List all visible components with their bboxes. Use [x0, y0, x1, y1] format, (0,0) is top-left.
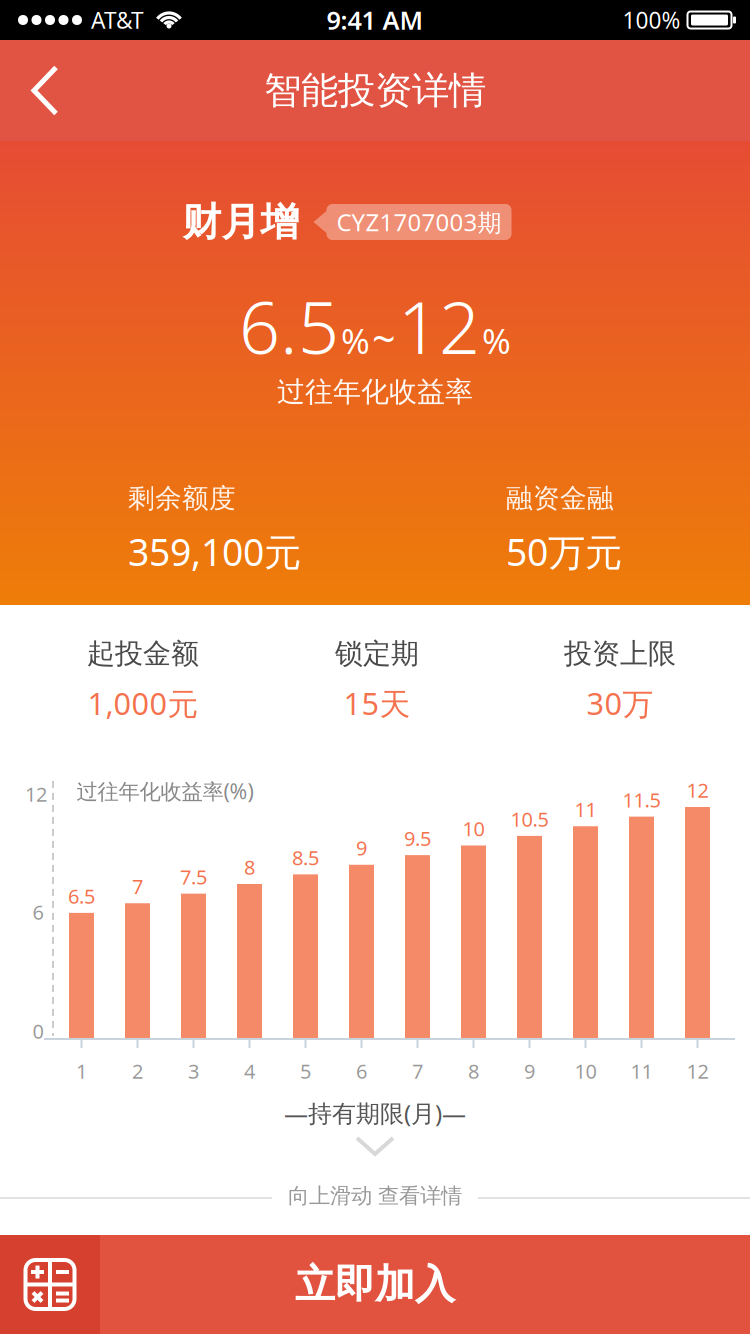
staticText: 100%: [622, 5, 680, 35]
staticText: 9:41 AM: [326, 3, 423, 37]
staticText: 7: [412, 1058, 423, 1084]
staticText: 8.5: [292, 844, 319, 871]
staticText: 3: [188, 1058, 199, 1084]
staticText: 6.5: [239, 278, 339, 374]
staticText: 7.5: [180, 863, 207, 890]
staticText: 7: [132, 873, 143, 900]
staticText: 359,100元: [128, 527, 301, 576]
staticText: 12: [25, 781, 47, 807]
staticText: 8: [244, 854, 255, 880]
staticText: 过往年化收益率: [277, 375, 473, 409]
staticText: 50万元: [506, 527, 622, 576]
staticText: 11: [574, 796, 596, 823]
staticText: 11: [630, 1058, 652, 1084]
staticText: 0: [32, 1018, 43, 1044]
staticText: 4: [244, 1058, 255, 1084]
staticText: 智能投资详情: [264, 68, 486, 113]
staticText: 10: [574, 1058, 596, 1084]
staticText: CYZ1707003期: [336, 206, 501, 238]
staticText: 12: [686, 777, 708, 803]
staticText: —持有期限(月)—: [284, 1097, 466, 1129]
staticText: 财月增: [182, 198, 299, 246]
staticText: 10.5: [510, 806, 548, 832]
staticText: %: [341, 317, 370, 363]
staticText: 立即加入: [295, 1260, 455, 1309]
staticText: 融资金融: [506, 482, 614, 515]
staticText: 10: [462, 815, 484, 842]
staticText: 9: [356, 834, 367, 861]
staticText: 过往年化收益率(%): [76, 777, 253, 805]
button[interactable]: Calculator: [0, 1235, 100, 1334]
staticText: 向上滑动 查看详情: [288, 1183, 462, 1209]
staticText: 12: [686, 1058, 708, 1084]
staticText: 1,000元: [87, 683, 198, 723]
staticText: 6: [356, 1058, 367, 1084]
staticText: 锁定期: [335, 636, 419, 671]
button[interactable]: Back: [0, 43, 86, 137]
staticText: 1: [76, 1058, 87, 1084]
staticText: 9.5: [404, 825, 431, 851]
button[interactable]: 立即加入: [0, 1235, 750, 1334]
staticText: 5: [300, 1058, 311, 1084]
staticText: 剩余额度: [128, 482, 236, 515]
staticText: 15天: [343, 683, 410, 723]
staticText: 11.5: [622, 786, 660, 813]
staticText: 9: [524, 1058, 535, 1084]
staticText: 30万: [586, 683, 653, 723]
staticText: 8: [468, 1058, 479, 1084]
staticText: %: [482, 317, 511, 363]
staticText: ~: [372, 310, 396, 365]
staticText: 起投金额: [87, 636, 199, 671]
staticText: 2: [132, 1058, 143, 1084]
staticText: 投资上限: [564, 636, 676, 671]
staticText: 6: [32, 899, 43, 925]
staticText: 12: [398, 278, 480, 374]
staticText: 6.5: [68, 883, 95, 909]
staticText: AT&T: [91, 5, 144, 35]
